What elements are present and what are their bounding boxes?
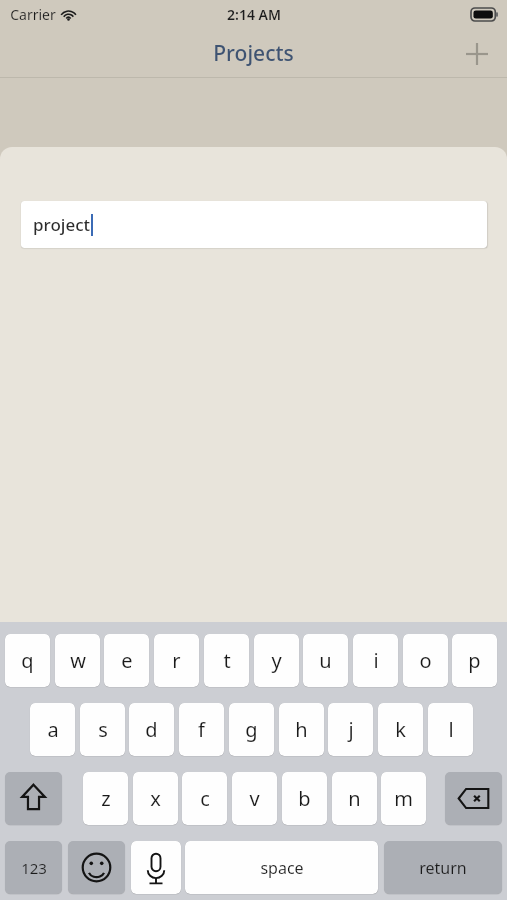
staticText: 123: [21, 858, 47, 878]
staticText: t: [223, 647, 231, 674]
button[interactable]: Backspace: [445, 772, 502, 825]
staticText: c: [200, 785, 210, 812]
button[interactable]: Shift: [5, 772, 62, 825]
button[interactable]: x: [133, 772, 178, 825]
button[interactable]: y: [254, 634, 299, 687]
button[interactable]: project: [21, 201, 487, 248]
staticText: u: [319, 647, 332, 674]
button[interactable]: space: [185, 841, 378, 894]
staticText: j: [348, 716, 354, 743]
button[interactable]: v: [232, 772, 277, 825]
button[interactable]: w: [55, 634, 100, 687]
button[interactable]: h: [279, 703, 324, 756]
button[interactable]: k: [378, 703, 423, 756]
button[interactable]: Dictation: [131, 841, 181, 894]
button[interactable]: Emoji: [68, 841, 125, 894]
button[interactable]: e: [104, 634, 149, 687]
staticText: n: [348, 785, 361, 812]
staticText: f: [198, 716, 205, 743]
button[interactable]: n: [332, 772, 377, 825]
button[interactable]: m: [381, 772, 426, 825]
staticText: i: [373, 647, 379, 674]
button[interactable]: Add project: [455, 32, 499, 76]
button[interactable]: d: [129, 703, 174, 756]
button[interactable]: f: [179, 703, 224, 756]
button[interactable]: g: [229, 703, 274, 756]
button[interactable]: q: [5, 634, 50, 687]
button[interactable]: return: [384, 841, 502, 894]
staticText: e: [121, 647, 133, 674]
staticText: g: [245, 716, 258, 743]
staticText: m: [394, 785, 413, 812]
staticText: s: [98, 716, 108, 743]
button[interactable]: a: [30, 703, 75, 756]
button[interactable]: j: [328, 703, 373, 756]
staticText: h: [295, 716, 308, 743]
staticText: d: [145, 716, 158, 743]
button[interactable]: 123: [5, 841, 62, 894]
staticText: p: [468, 647, 481, 674]
staticText: Projects: [213, 39, 294, 68]
staticText: k: [395, 716, 406, 743]
staticText: r: [172, 647, 181, 674]
staticText: project: [33, 213, 90, 236]
staticText: y: [271, 647, 282, 674]
button[interactable]: b: [282, 772, 327, 825]
staticText: space: [260, 857, 304, 879]
button[interactable]: r: [154, 634, 199, 687]
button[interactable]: i: [353, 634, 398, 687]
staticText: Carrier: [10, 5, 56, 24]
button[interactable]: l: [428, 703, 473, 756]
staticText: v: [249, 785, 260, 812]
staticText: x: [150, 785, 161, 812]
button[interactable]: o: [403, 634, 448, 687]
button[interactable]: u: [303, 634, 348, 687]
staticText: 2:14 AM: [227, 5, 281, 24]
button[interactable]: z: [83, 772, 128, 825]
staticText: return: [419, 857, 467, 879]
staticText: q: [21, 647, 34, 674]
staticText: w: [70, 647, 86, 674]
button[interactable]: t: [204, 634, 249, 687]
staticText: z: [101, 785, 111, 812]
staticText: l: [448, 716, 454, 743]
button[interactable]: c: [182, 772, 227, 825]
staticText: o: [419, 647, 432, 674]
button[interactable]: p: [452, 634, 497, 687]
staticText: b: [298, 785, 311, 812]
staticText: a: [47, 716, 59, 743]
button[interactable]: s: [80, 703, 125, 756]
